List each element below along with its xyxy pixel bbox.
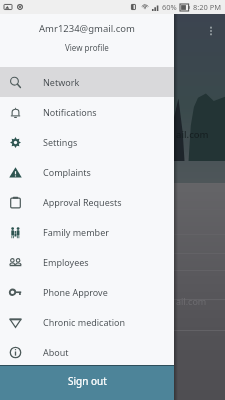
button[interactable]: Sign out bbox=[0, 366, 174, 400]
staticText: Complaints bbox=[43, 166, 91, 178]
staticText: 8:20 PM bbox=[193, 2, 222, 12]
staticText: Employees bbox=[43, 256, 89, 268]
button[interactable]: Settings bbox=[0, 127, 174, 157]
button[interactable]: Complaints bbox=[0, 157, 174, 187]
button[interactable]: Employees bbox=[0, 247, 174, 277]
staticText: Notifications bbox=[43, 106, 97, 118]
staticText: About bbox=[43, 346, 69, 358]
staticText: 60% bbox=[162, 2, 177, 12]
button[interactable]: About bbox=[0, 337, 174, 367]
button[interactable]: Network bbox=[0, 67, 174, 97]
staticText: Family member bbox=[43, 226, 109, 238]
button[interactable]: Notifications bbox=[0, 97, 174, 127]
other: More options bbox=[205, 25, 217, 37]
staticText: Sign out bbox=[68, 374, 107, 388]
staticText: ail.com bbox=[176, 128, 209, 141]
button[interactable]: Family member bbox=[0, 217, 174, 247]
staticText: Chronic medication bbox=[43, 316, 126, 328]
staticText: View profile bbox=[65, 42, 109, 53]
staticText: Network bbox=[43, 76, 80, 88]
button[interactable]: Chronic medication bbox=[0, 307, 174, 337]
button[interactable]: Phone Approve bbox=[0, 277, 174, 307]
staticText: Settings bbox=[43, 136, 78, 148]
staticText: Phone Approve bbox=[43, 286, 108, 298]
staticText: Approval Requests bbox=[43, 196, 122, 208]
button[interactable]: Approval Requests bbox=[0, 187, 174, 217]
button[interactable]: Amr1234@gmail.com bbox=[0, 14, 174, 67]
staticText: ail.com bbox=[176, 295, 207, 307]
staticText: Amr1234@gmail.com bbox=[39, 22, 135, 35]
